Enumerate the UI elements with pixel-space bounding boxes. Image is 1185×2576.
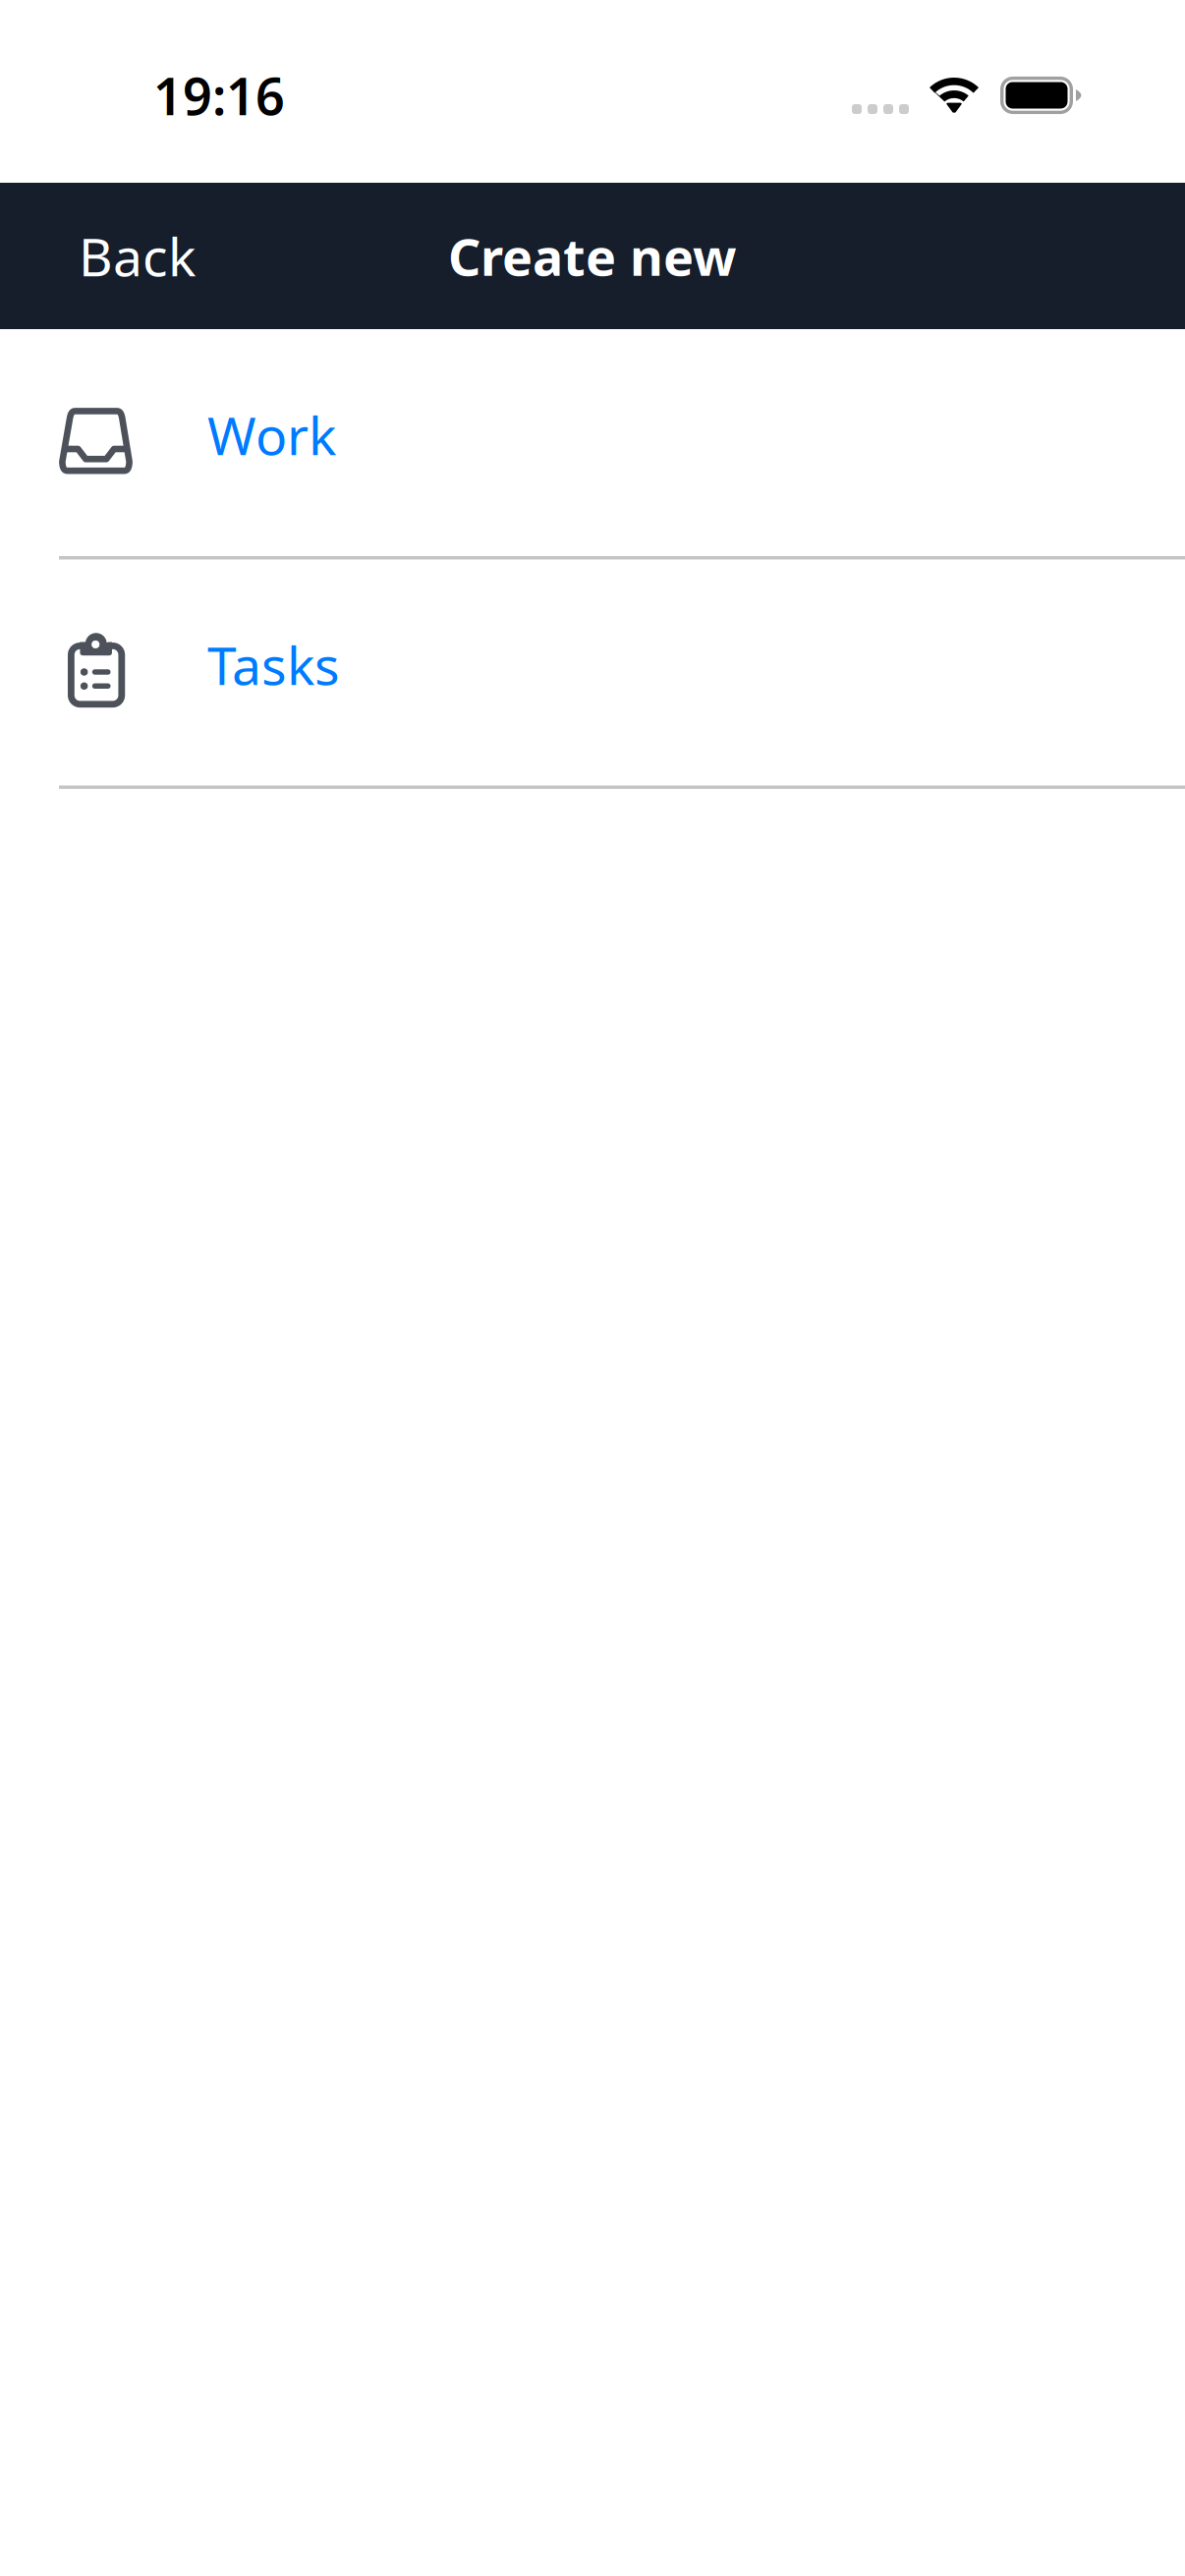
button[interactable]: Work bbox=[0, 329, 1185, 556]
staticText: Tasks bbox=[207, 630, 340, 699]
staticText: 19:16 bbox=[153, 61, 285, 129]
button[interactable]: Tasks bbox=[0, 560, 1185, 785]
staticText: Back bbox=[79, 221, 196, 291]
staticText: Work bbox=[207, 400, 336, 470]
staticText: Create new bbox=[448, 222, 737, 290]
button[interactable]: Back bbox=[0, 190, 241, 322]
